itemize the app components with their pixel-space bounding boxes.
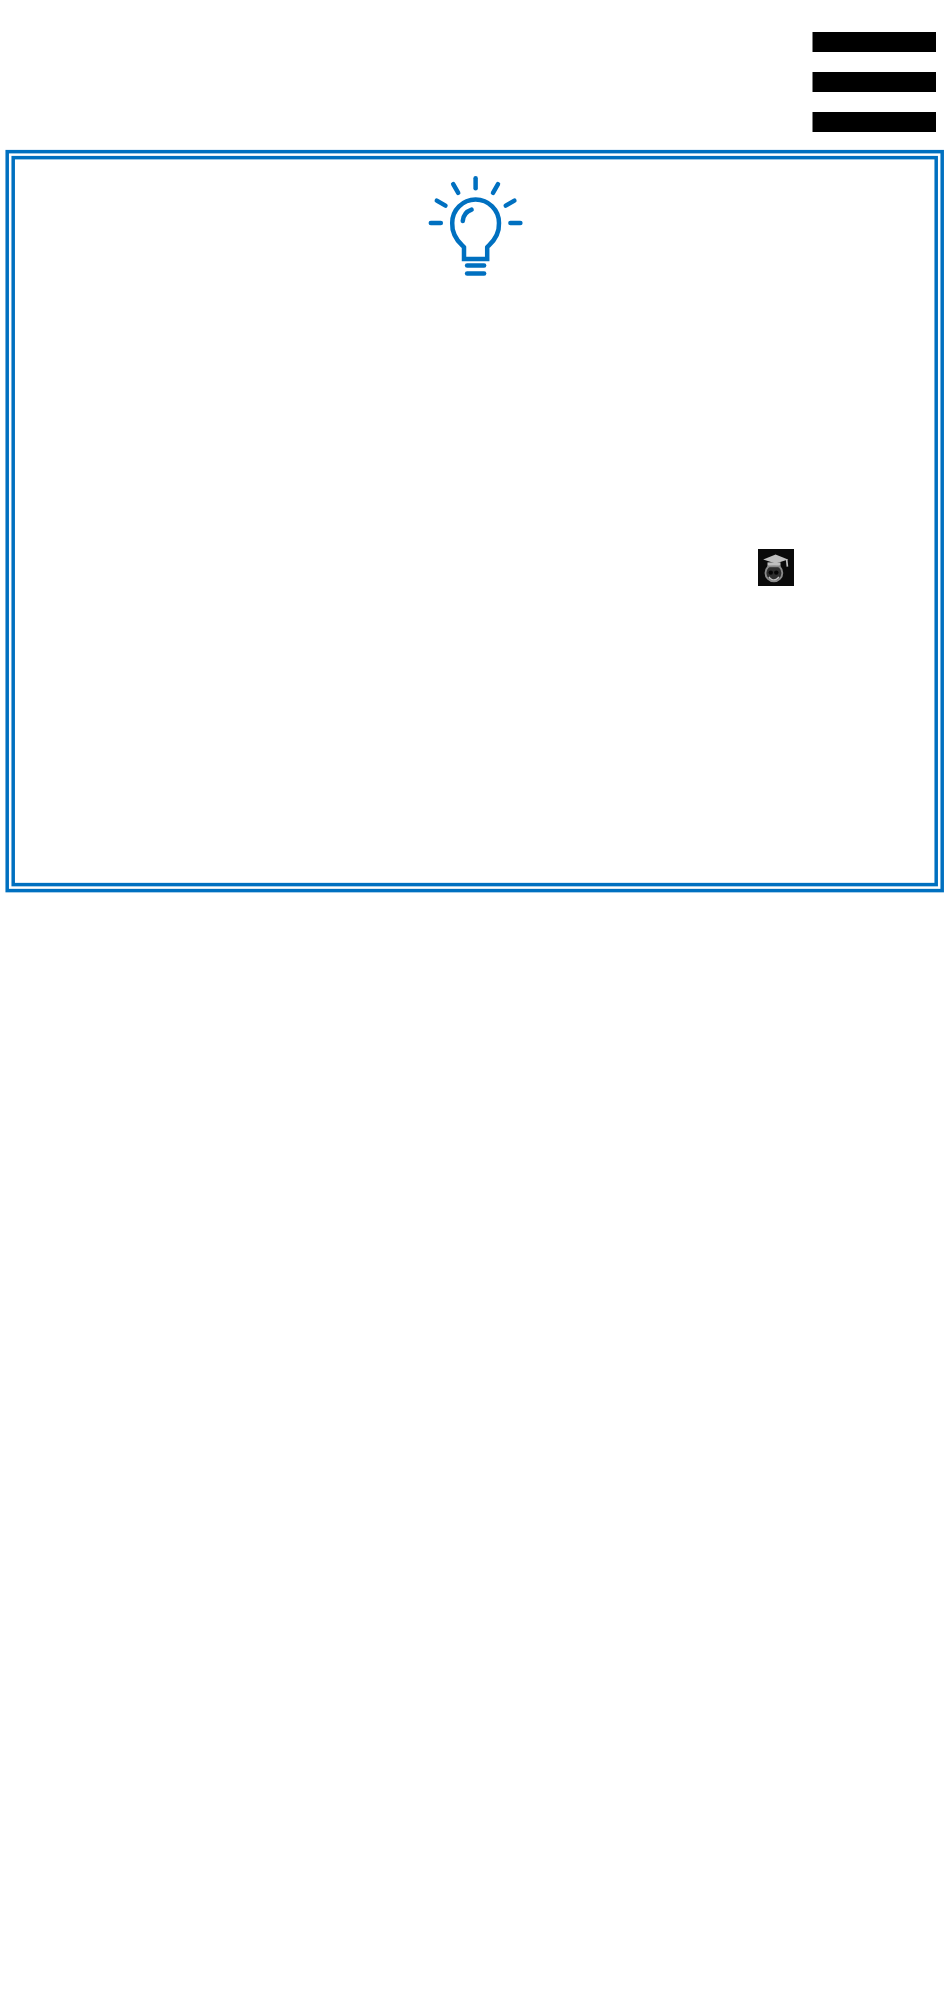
button[interactable]: Student xyxy=(758,549,794,586)
button[interactable]: Open navigation menu xyxy=(812,32,936,132)
button[interactable]: Idea xyxy=(428,163,536,271)
